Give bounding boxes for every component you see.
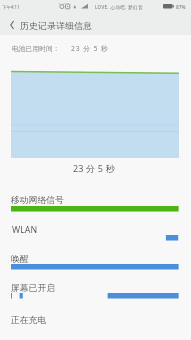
button[interactable]: 移动网络信号 bbox=[0, 192, 191, 218]
staticText: 屏幕已开启 bbox=[11, 283, 55, 294]
staticText: 历史记录详细信息 bbox=[20, 21, 93, 32]
staticText: 正在充电 bbox=[11, 315, 47, 326]
staticText: 23 分 5 秒 bbox=[73, 162, 115, 174]
staticText: 唤醒 bbox=[11, 254, 29, 265]
button[interactable]: Back bbox=[3, 14, 21, 35]
staticText: 移动网络信号 bbox=[11, 195, 64, 206]
staticText: LOVE. 心动吧. 梦幻音 bbox=[95, 4, 143, 10]
button[interactable]: 正在充电 bbox=[0, 312, 191, 338]
button[interactable]: 屏幕已开启 bbox=[0, 280, 191, 306]
button[interactable]: 唤醒 bbox=[0, 251, 191, 277]
staticText: WLAN bbox=[12, 224, 38, 236]
staticText: 87% bbox=[176, 4, 186, 11]
staticText: 下午4:11 bbox=[2, 4, 20, 10]
button[interactable]: WLAN bbox=[0, 221, 191, 247]
staticText: 23 分 5 秒 bbox=[71, 44, 109, 53]
staticText: 电池已用时间： bbox=[12, 44, 60, 53]
